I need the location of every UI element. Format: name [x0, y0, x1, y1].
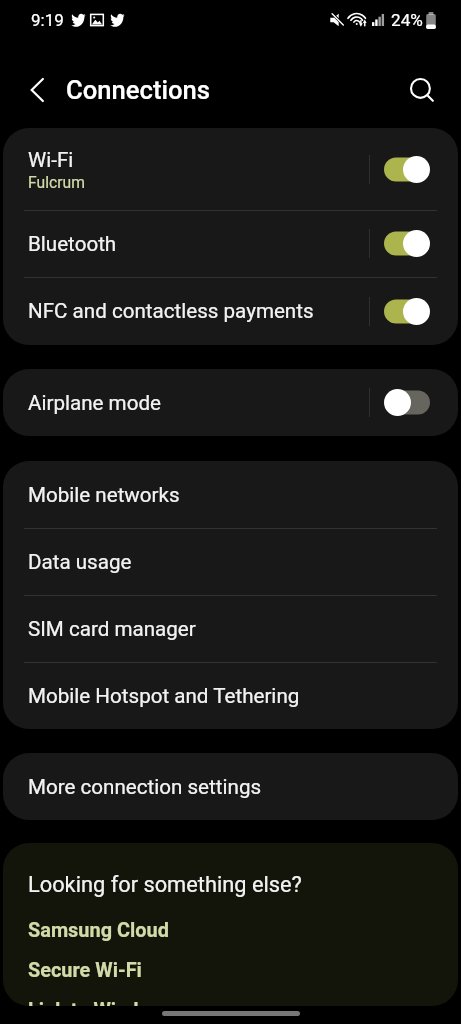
button[interactable]: Toggle on: [384, 156, 430, 183]
button[interactable]: Toggle on: [384, 230, 430, 257]
button[interactable]: Link to Windows: [3, 999, 458, 1006]
button[interactable]: Mobile networks: [3, 461, 458, 528]
staticText: Looking for something else?: [28, 872, 302, 898]
staticText: Link to Windows: [28, 999, 175, 1006]
staticText: Connections: [66, 75, 210, 105]
staticText: Airplane mode: [28, 391, 161, 415]
button[interactable]: Toggle on: [384, 298, 430, 325]
staticText: Secure Wi-Fi: [28, 959, 142, 982]
staticText: Bluetooth: [28, 232, 117, 256]
staticText: More connection settings: [28, 775, 262, 799]
staticText: Wi-Fi: [28, 148, 74, 172]
staticText: Mobile networks: [28, 483, 180, 507]
button[interactable]: Search: [400, 68, 444, 112]
button[interactable]: Data usage: [3, 528, 458, 595]
button[interactable]: SIM card manager: [3, 595, 458, 662]
button[interactable]: Airplane mode: [3, 369, 458, 436]
button[interactable]: Mobile Hotspot and Tethering: [3, 662, 458, 729]
button[interactable]: Secure Wi-Fi: [3, 959, 458, 982]
staticText: SIM card manager: [28, 617, 196, 641]
staticText: Samsung Cloud: [28, 919, 169, 942]
staticText: Mobile Hotspot and Tethering: [28, 684, 300, 708]
staticText: 9:19: [31, 10, 64, 30]
button[interactable]: Bluetooth: [3, 210, 458, 277]
staticText: Data usage: [28, 550, 132, 574]
staticText: Fulcrum: [28, 173, 85, 191]
button[interactable]: Samsung Cloud: [3, 919, 458, 942]
button[interactable]: NFC and contactless payments: [3, 277, 458, 345]
staticText: NFC and contactless payments: [28, 299, 314, 323]
button[interactable]: Back: [15, 68, 59, 112]
button[interactable]: More connection settings: [3, 753, 458, 820]
button[interactable]: Toggle off: [384, 389, 430, 416]
staticText: 24%: [391, 10, 423, 30]
button[interactable]: Wi-Fi: [3, 128, 458, 210]
